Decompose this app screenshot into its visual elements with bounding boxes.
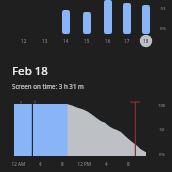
button[interactable]: Battery usage chart for Feb 18	[0, 0, 172, 172]
